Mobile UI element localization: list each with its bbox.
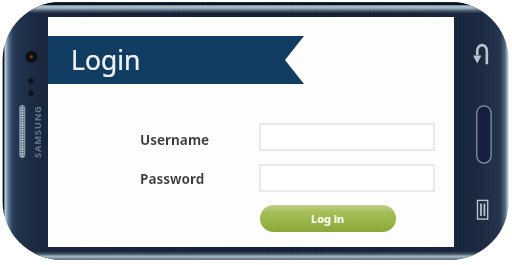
button[interactable]: Home bbox=[474, 103, 494, 166]
staticText: Log in bbox=[311, 211, 345, 226]
button[interactable]: Back bbox=[472, 40, 494, 68]
button[interactable]: Login bbox=[48, 36, 304, 84]
staticText: Login bbox=[71, 42, 141, 78]
button[interactable] bbox=[260, 165, 434, 191]
staticText: Username bbox=[140, 131, 210, 149]
button[interactable]: Log in bbox=[260, 205, 396, 232]
button[interactable] bbox=[260, 124, 434, 150]
staticText: Password bbox=[140, 170, 205, 188]
button[interactable]: Menu bbox=[472, 196, 494, 224]
staticText: SAMSUNG bbox=[31, 105, 44, 158]
